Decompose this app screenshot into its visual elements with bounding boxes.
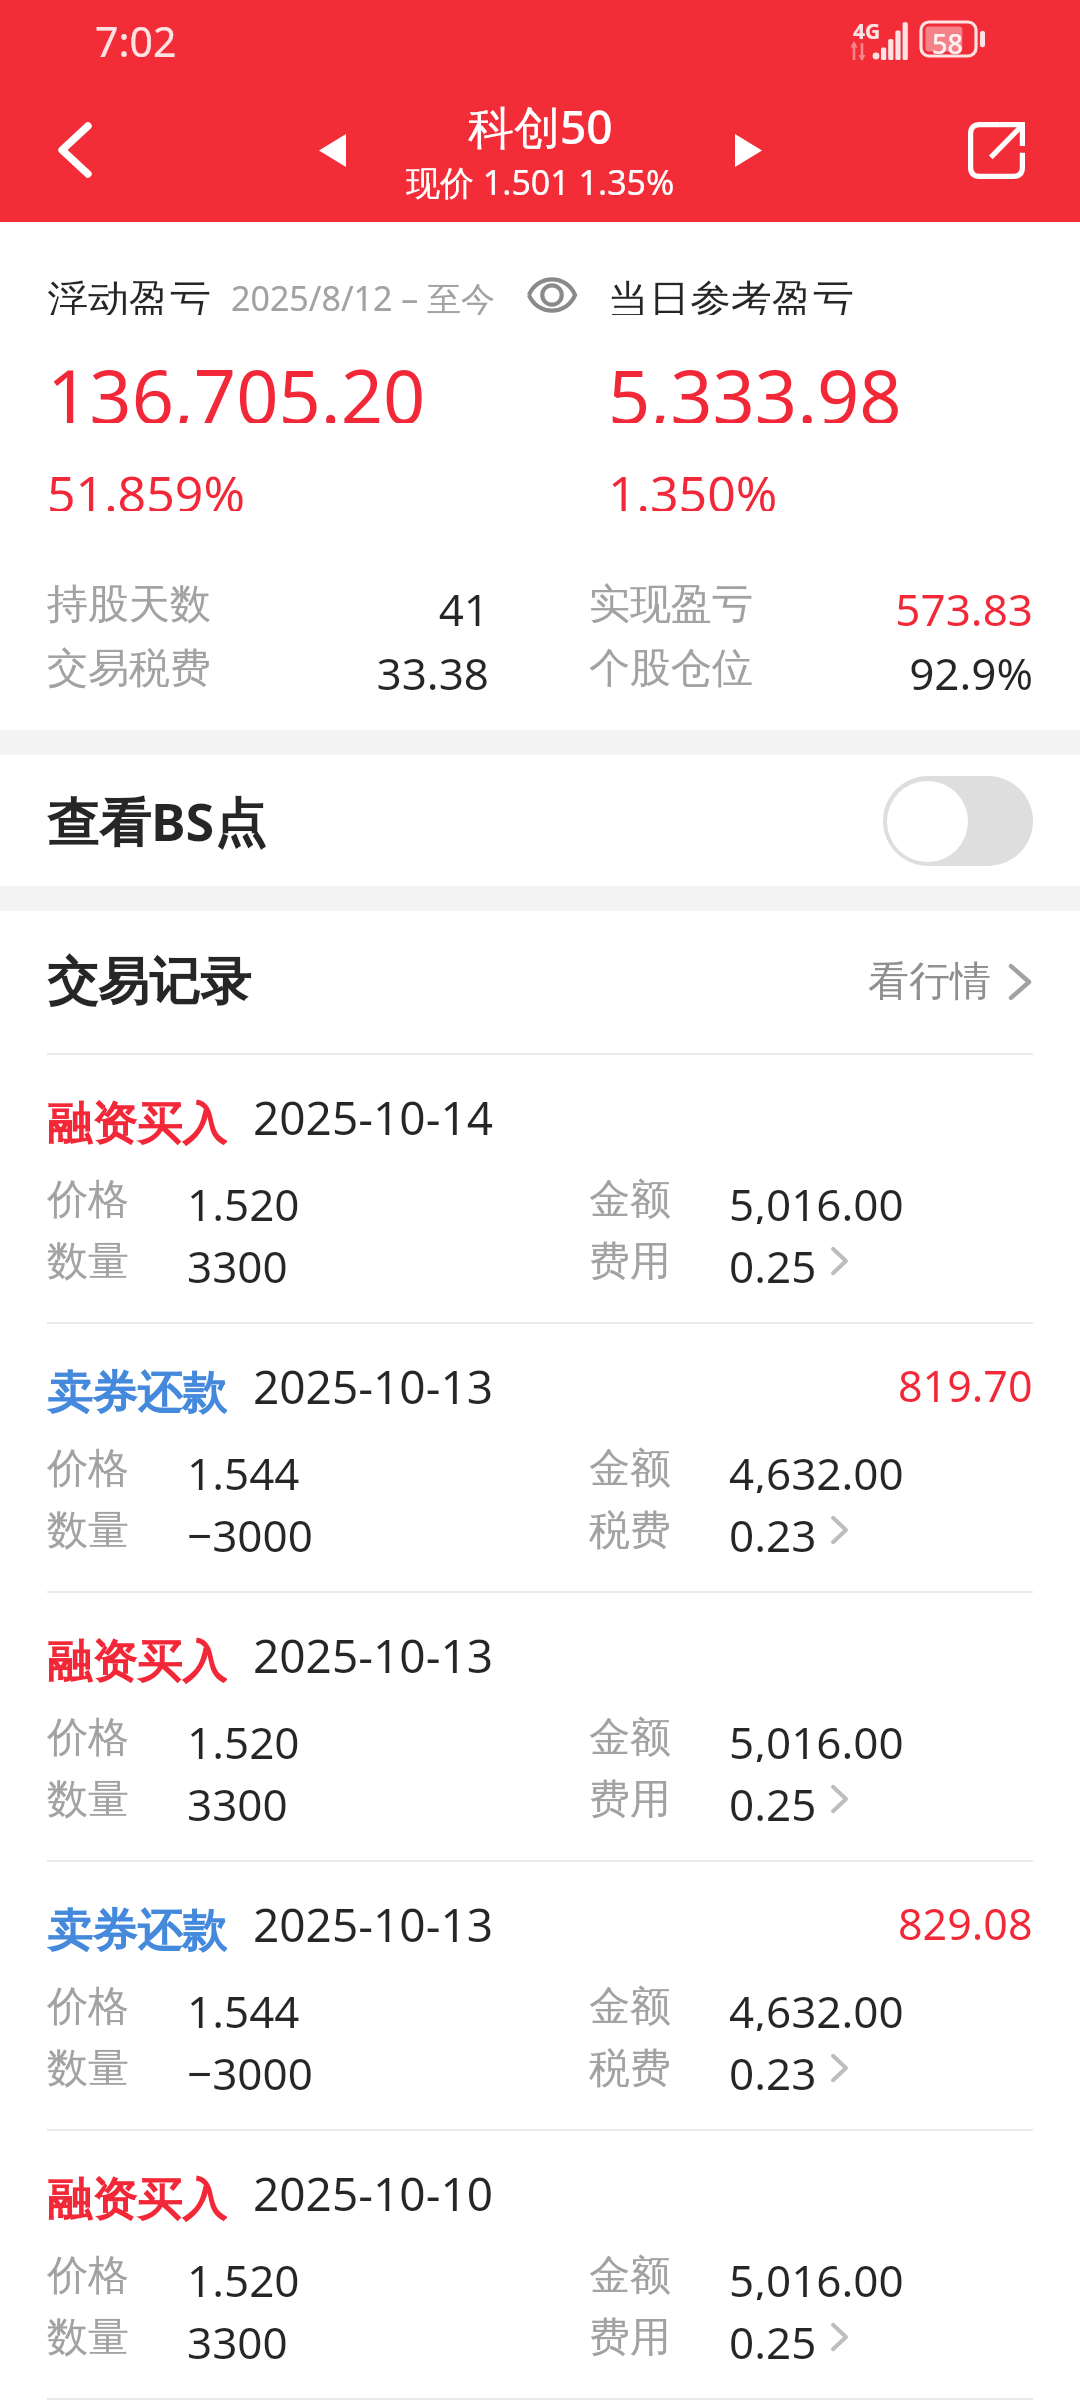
staticText: 41 xyxy=(211,579,489,629)
staticText: 金额 xyxy=(589,1981,671,2031)
staticText: 金额 xyxy=(589,1712,671,1762)
staticText: 5,016.00 xyxy=(729,2250,904,2300)
staticText: 3300 xyxy=(187,1236,288,1286)
staticText: 税费 xyxy=(589,2043,671,2093)
button[interactable]: 融资买入 xyxy=(0,1593,1080,1860)
staticText: 7:02 xyxy=(95,13,177,69)
staticText: 费用 xyxy=(589,1236,671,1286)
staticText: 当日参考盈亏 xyxy=(608,275,854,315)
staticText: 819.70 xyxy=(898,1356,1033,1408)
staticText: 价格 xyxy=(47,1174,129,1224)
staticText: 0.25 xyxy=(729,1774,817,1824)
staticText: 0.25 xyxy=(729,1236,817,1286)
staticText: 5,016.00 xyxy=(729,1712,904,1762)
staticText: 2025-10-13 xyxy=(253,1893,494,1945)
staticText: 2025/8/12 – 至今 xyxy=(231,275,496,315)
button[interactable]: 卖券还款 xyxy=(0,1324,1080,1591)
staticText: 4,632.00 xyxy=(729,1981,904,2031)
staticText: 数量 xyxy=(47,1774,129,1824)
staticText: 58 xyxy=(932,25,963,62)
staticText: 1.520 xyxy=(187,1174,300,1224)
staticText: 金额 xyxy=(589,1443,671,1493)
staticText: 5,016.00 xyxy=(729,1174,904,1224)
staticText: 数量 xyxy=(47,2312,129,2362)
staticText: 2025-10-13 xyxy=(253,1355,494,1407)
staticText: 卖券还款 xyxy=(47,1365,227,1417)
staticText: 1.350% xyxy=(608,459,778,511)
staticText: 2025-10-14 xyxy=(253,1086,494,1138)
staticText: 数量 xyxy=(47,2043,129,2093)
staticText: 个股仓位 xyxy=(589,643,753,693)
staticText: 现价 1.501 1.35% xyxy=(406,159,675,205)
staticText: 融资买入 xyxy=(47,1096,227,1148)
staticText: 价格 xyxy=(47,1981,129,2031)
staticText: 1.544 xyxy=(187,1981,300,2031)
button[interactable]: Previous stock xyxy=(274,90,390,222)
staticText: 3300 xyxy=(187,1774,288,1824)
staticText: 价格 xyxy=(47,2250,129,2300)
staticText: 92.9% xyxy=(753,643,1033,693)
button[interactable]: 看行情 xyxy=(868,956,1033,1008)
staticText: 1.544 xyxy=(187,1443,300,1493)
staticText: −3000 xyxy=(187,2043,313,2093)
staticText: 829.08 xyxy=(898,1894,1033,1946)
staticText: 金额 xyxy=(589,1174,671,1224)
staticText: 费用 xyxy=(589,1774,671,1824)
staticText: 1.520 xyxy=(187,2250,300,2300)
button[interactable]: 融资买入 xyxy=(0,1055,1080,1322)
button[interactable]: BS points switch xyxy=(883,776,1033,866)
staticText: 价格 xyxy=(47,1443,129,1493)
button[interactable]: 卖券还款 xyxy=(0,1862,1080,2129)
staticText: 0.23 xyxy=(729,1505,817,1555)
button[interactable]: 融资买入 xyxy=(0,2131,1080,2398)
staticText: 5,333.98 xyxy=(608,345,902,423)
staticText: 卖券还款 xyxy=(47,1903,227,1955)
staticText: 价格 xyxy=(47,1712,129,1762)
staticText: 51.859% xyxy=(47,459,245,511)
button[interactable]: Toggle visibility xyxy=(528,275,576,315)
staticText: 查看BS点 xyxy=(47,785,267,856)
staticText: 费用 xyxy=(589,2312,671,2362)
staticText: 数量 xyxy=(47,1505,129,1555)
staticText: 交易税费 xyxy=(47,643,211,693)
staticText: 融资买入 xyxy=(47,2172,227,2224)
staticText: 持股天数 xyxy=(47,579,211,629)
staticText: 1.520 xyxy=(187,1712,300,1762)
staticText: 0.23 xyxy=(729,2043,817,2093)
button[interactable]: Share xyxy=(912,90,1080,222)
staticText: 2025-10-10 xyxy=(253,2162,494,2214)
button[interactable]: Next stock xyxy=(690,90,806,222)
staticText: 573.83 xyxy=(753,579,1033,629)
staticText: 2025-10-13 xyxy=(253,1624,494,1676)
staticText: 3300 xyxy=(187,2312,288,2362)
staticText: 数量 xyxy=(47,1236,129,1286)
staticText: 136,705.20 xyxy=(47,345,426,423)
staticText: 金额 xyxy=(589,2250,671,2300)
staticText: 税费 xyxy=(589,1505,671,1555)
staticText: 融资买入 xyxy=(47,1634,227,1686)
staticText: 4G xyxy=(853,17,881,46)
staticText: 交易记录 xyxy=(47,950,251,1014)
staticText: 4,632.00 xyxy=(729,1443,904,1493)
button[interactable]: 查看BS点 xyxy=(0,755,1080,886)
staticText: 科创50 xyxy=(468,95,613,158)
button[interactable]: Back xyxy=(0,90,150,222)
staticText: 看行情 xyxy=(868,956,991,1008)
staticText: 33.38 xyxy=(211,643,489,693)
staticText: 浮动盈亏 xyxy=(47,275,211,315)
staticText: 实现盈亏 xyxy=(589,579,753,629)
staticText: 0.25 xyxy=(729,2312,817,2362)
staticText: −3000 xyxy=(187,1505,313,1555)
